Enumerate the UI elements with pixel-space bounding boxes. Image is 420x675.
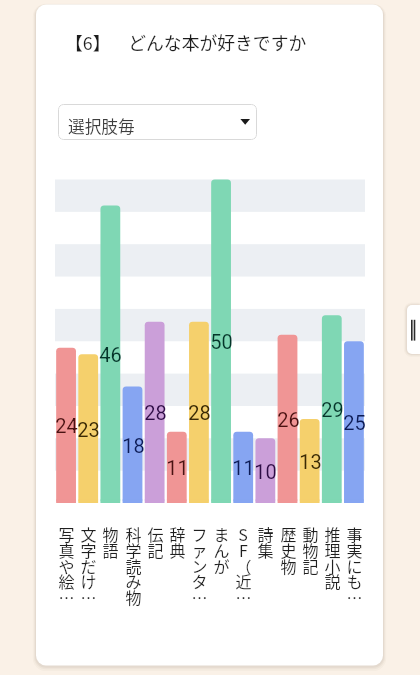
staticText: け [80,569,97,592]
staticText: F [239,538,248,561]
staticText: ン [191,554,208,577]
staticText: 10 [254,460,277,483]
staticText: 26 [277,408,300,431]
staticText: 読 [125,554,142,577]
staticText: 50 [210,330,233,353]
staticText: が [213,554,230,577]
staticText: 実 [346,538,363,561]
staticText: 写 [58,522,75,545]
staticText: 13 [299,450,322,473]
staticText: （ [235,554,252,577]
staticText: … [58,585,75,608]
staticText: 字 [80,538,97,561]
staticText: 記 [147,538,164,561]
staticText: 11 [232,456,255,479]
staticText: 近 [235,569,252,592]
staticText: 記 [302,554,319,577]
staticText: 物 [280,554,297,577]
staticText: ァ [191,538,208,561]
staticText: 歴 [280,522,297,545]
staticText: 選択肢毎 [68,114,135,138]
staticText: ん [213,538,230,561]
staticText: 物 [125,585,142,608]
staticText: 説 [324,569,341,592]
staticText: 事 [346,522,363,545]
staticText: 18 [122,434,145,457]
staticText: 詩 [257,522,274,545]
staticText: や [58,554,75,577]
staticText: に [346,554,363,577]
staticText: フ [191,522,208,545]
staticText: も [346,569,363,592]
staticText: S [238,522,248,545]
staticText: タ [191,569,208,592]
button[interactable]: Resize handle [407,305,420,354]
staticText: … [346,585,363,608]
button[interactable]: 選択肢毎 [58,104,257,140]
staticText: 典 [169,538,186,561]
staticText: 【6】 どんな本が好きですか [65,29,307,55]
staticText: 文 [80,522,97,545]
staticText: 29 [321,398,344,421]
staticText: 24 [55,414,78,437]
staticText: 動 [302,522,319,545]
staticText: 25 [343,411,366,434]
staticText: 辞 [169,522,186,545]
staticText: … [191,585,208,608]
staticText: 28 [188,401,211,424]
staticText: 伝 [147,522,164,545]
staticText: 11 [166,456,189,479]
staticText: ま [213,522,230,545]
staticText: … [235,585,252,608]
staticText: 小 [324,554,341,577]
staticText: 物 [302,538,319,561]
staticText: 絵 [58,569,75,592]
staticText: み [125,569,142,592]
staticText: 真 [58,538,75,561]
staticText: 28 [144,401,167,424]
staticText: 科 [125,522,142,545]
staticText: 物 [102,522,119,545]
staticText: 学 [125,538,142,561]
staticText: … [80,585,97,608]
staticText: 語 [102,538,119,561]
staticText: 史 [280,538,297,561]
staticText: だ [80,554,97,577]
staticText: 23 [77,418,100,441]
staticText: 集 [257,538,274,561]
staticText: 推 [324,522,341,545]
staticText: 理 [324,538,341,561]
staticText: 46 [99,343,122,366]
